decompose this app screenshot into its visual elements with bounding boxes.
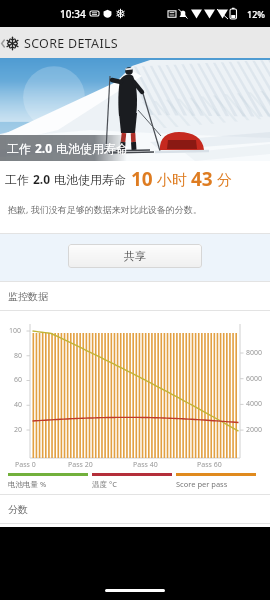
staticText: 60 [14, 375, 23, 385]
staticText: 共享 [124, 249, 146, 263]
staticText: Pass 0 [15, 460, 36, 470]
staticText: 电池使用寿命 [53, 140, 129, 156]
staticText: 12% [247, 8, 265, 20]
staticText: Pass 40 [133, 460, 158, 470]
staticText: 工作 [5, 171, 33, 187]
staticText: 40 [14, 400, 23, 410]
button[interactable]: Back [0, 29, 6, 57]
staticText: 监控数据 [8, 290, 48, 303]
staticText: Pass 20 [68, 460, 93, 470]
button[interactable]: 共享 [68, 244, 202, 268]
staticText: 小时 [153, 169, 191, 189]
staticText: 43 [191, 166, 213, 192]
staticText: 10 [131, 166, 153, 192]
staticText: 抱歉, 我们没有足够的数据来对比此设备的分数。 [8, 203, 202, 215]
staticText: Pass 60 [197, 460, 222, 470]
staticText: 8000 [246, 348, 263, 358]
staticText: 2.0 [35, 140, 53, 156]
staticText: 80 [14, 351, 23, 361]
staticText: 20 [14, 425, 23, 435]
staticText: 6000 [246, 374, 263, 384]
staticText: 4000 [246, 399, 263, 409]
staticText: 分数 [8, 503, 28, 516]
staticText: 温度 °C [92, 479, 117, 489]
staticText: Score per pass [176, 479, 228, 489]
staticText: 2000 [246, 425, 263, 435]
staticText: SCORE DETAILS [24, 35, 118, 52]
staticText: 电池使用寿命 [51, 171, 127, 187]
staticText: 工作 [7, 140, 35, 156]
staticText: 电池电量 % [8, 479, 47, 489]
staticText: 分 [213, 169, 232, 189]
staticText: 10:34 [60, 7, 86, 21]
staticText: 100 [9, 326, 22, 336]
staticText: 2.0 [33, 171, 51, 187]
